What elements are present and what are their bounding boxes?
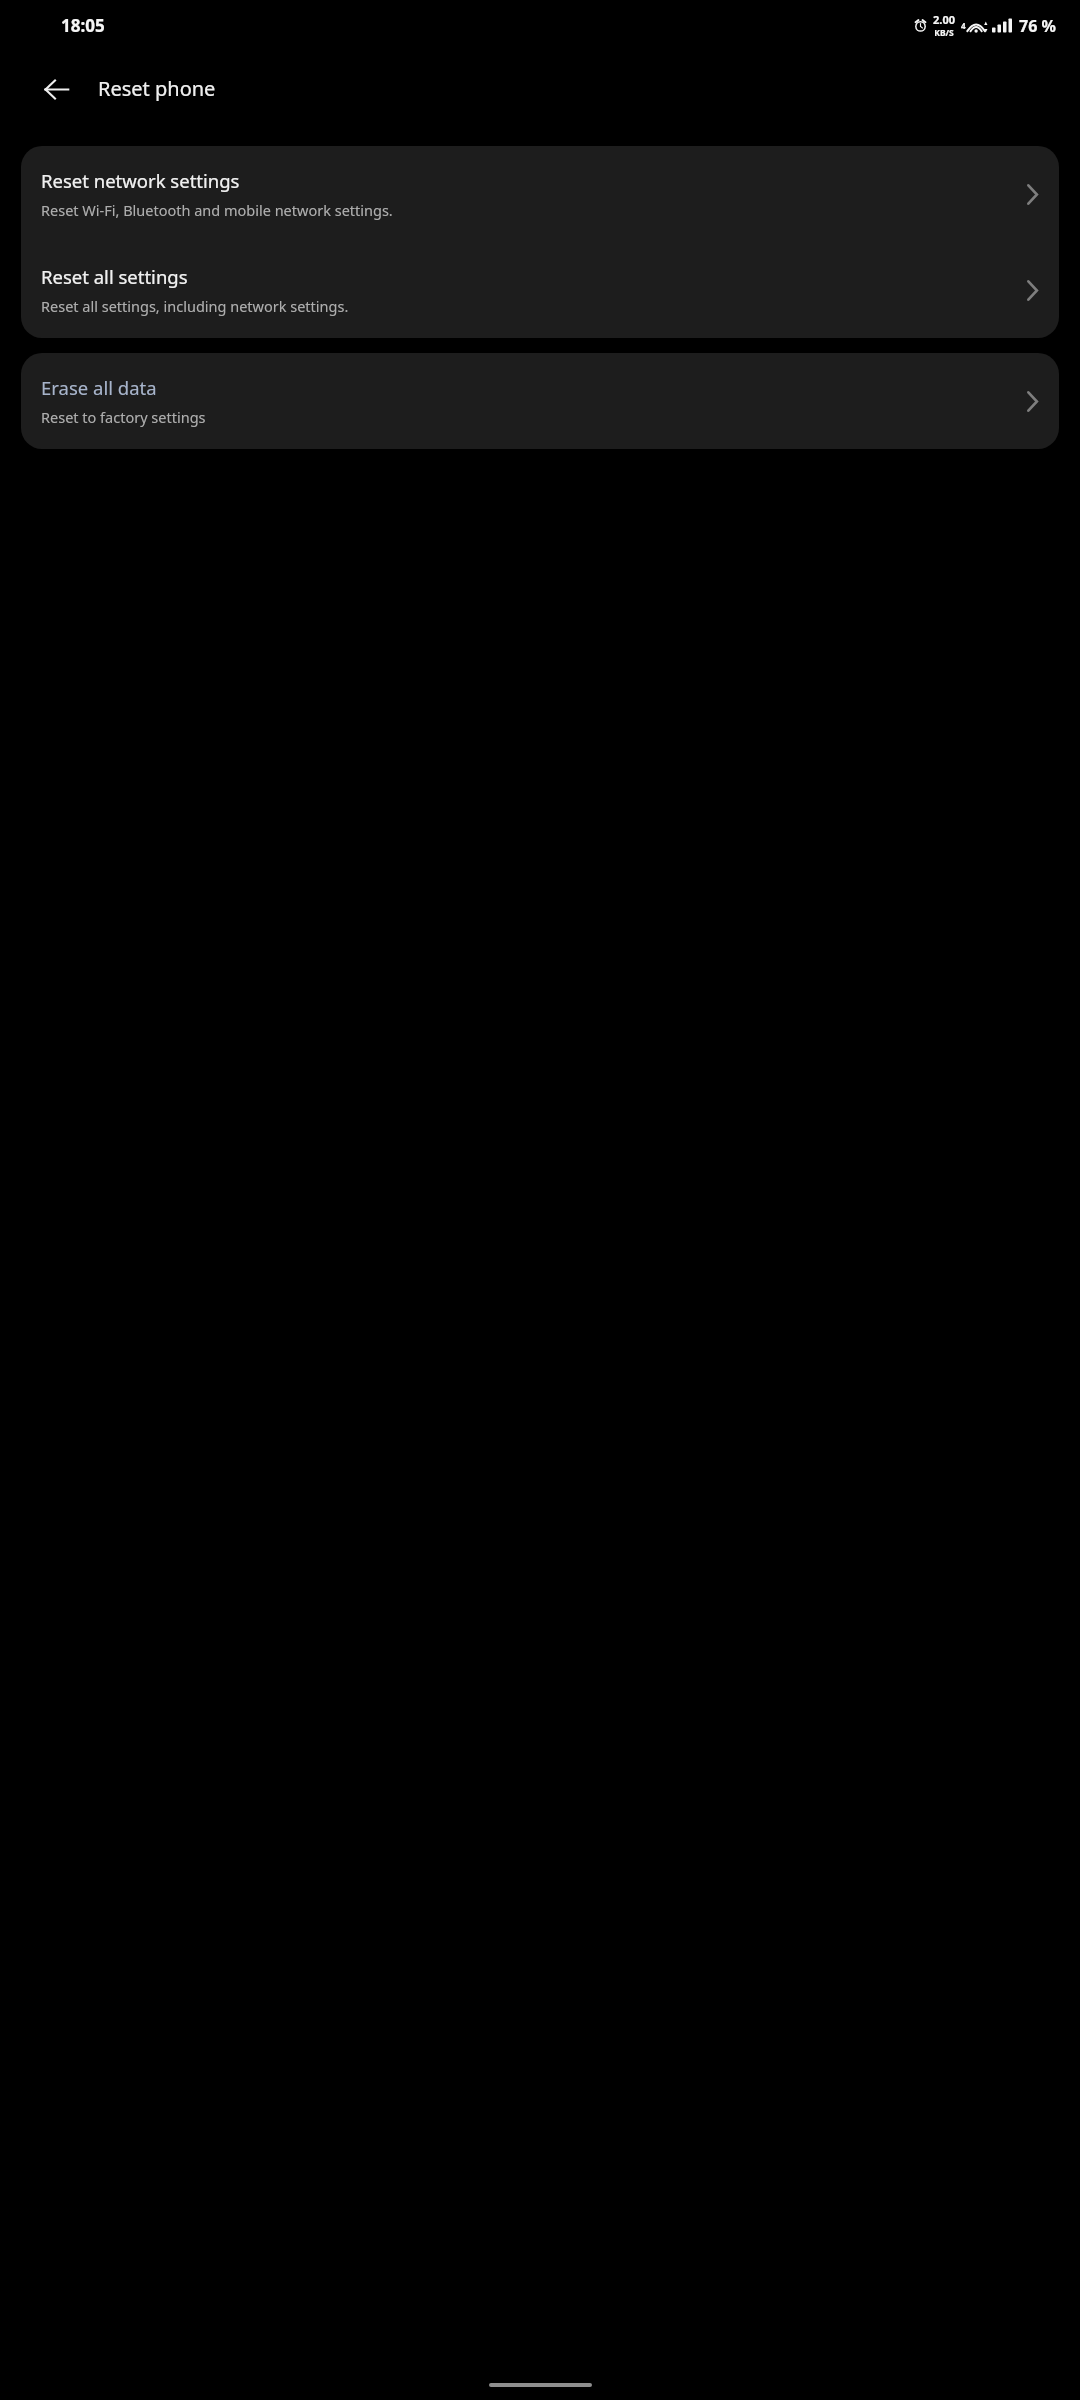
staticText: 2.00	[933, 12, 955, 27]
button[interactable]: Reset network settings	[21, 146, 1059, 242]
staticText: 4	[961, 20, 966, 31]
staticText: KB/S	[934, 27, 954, 39]
button[interactable]: Reset all settings	[21, 242, 1059, 338]
staticText: Reset network settings	[41, 168, 240, 193]
staticText: 76 %	[1019, 15, 1056, 37]
staticText: 18:05	[61, 14, 105, 37]
staticText: Reset all settings, including network se…	[41, 296, 349, 316]
button[interactable]: Back	[32, 65, 80, 113]
button[interactable]: Erase all data	[21, 353, 1059, 449]
staticText: Erase all data	[41, 375, 157, 400]
staticText: Reset all settings	[41, 264, 188, 289]
staticText: Reset phone	[98, 75, 216, 102]
staticText: Reset to factory settings	[41, 407, 206, 427]
staticText: Reset Wi-Fi, Bluetooth and mobile networ…	[41, 200, 393, 220]
